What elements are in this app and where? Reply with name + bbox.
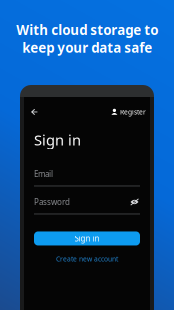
staticText: Create new account [56,254,118,263]
staticText: Password [34,197,70,207]
staticText: Sign in [34,130,81,149]
button[interactable]: Register [111,108,146,116]
staticText: With cloud storage to keep your data saf… [16,21,158,56]
button[interactable]: Sign in [34,231,140,245]
staticText: Email [34,169,53,179]
button[interactable]: Create new account [34,254,140,263]
staticText: Register [120,108,146,116]
staticText: Sign in [74,233,99,244]
button[interactable]: Back [29,106,40,118]
button[interactable]: Show password [129,196,140,207]
